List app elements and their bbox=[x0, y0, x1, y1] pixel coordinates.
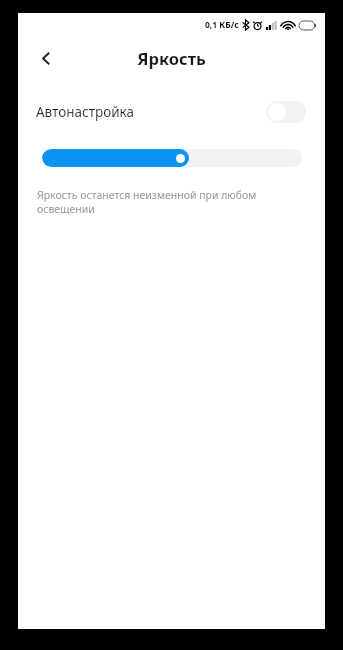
staticText: 0,1 КБ/c bbox=[205, 19, 239, 31]
button[interactable]: Яркость bbox=[18, 147, 325, 169]
button[interactable]: Автонастройка bbox=[18, 93, 325, 131]
staticText: Яркость bbox=[137, 47, 206, 69]
button[interactable]: Назад bbox=[28, 40, 64, 76]
staticText: Автонастройка bbox=[36, 103, 134, 121]
staticText: Яркость останется неизменной при любом о… bbox=[37, 188, 311, 216]
button[interactable]: Автонастройка bbox=[266, 101, 306, 123]
